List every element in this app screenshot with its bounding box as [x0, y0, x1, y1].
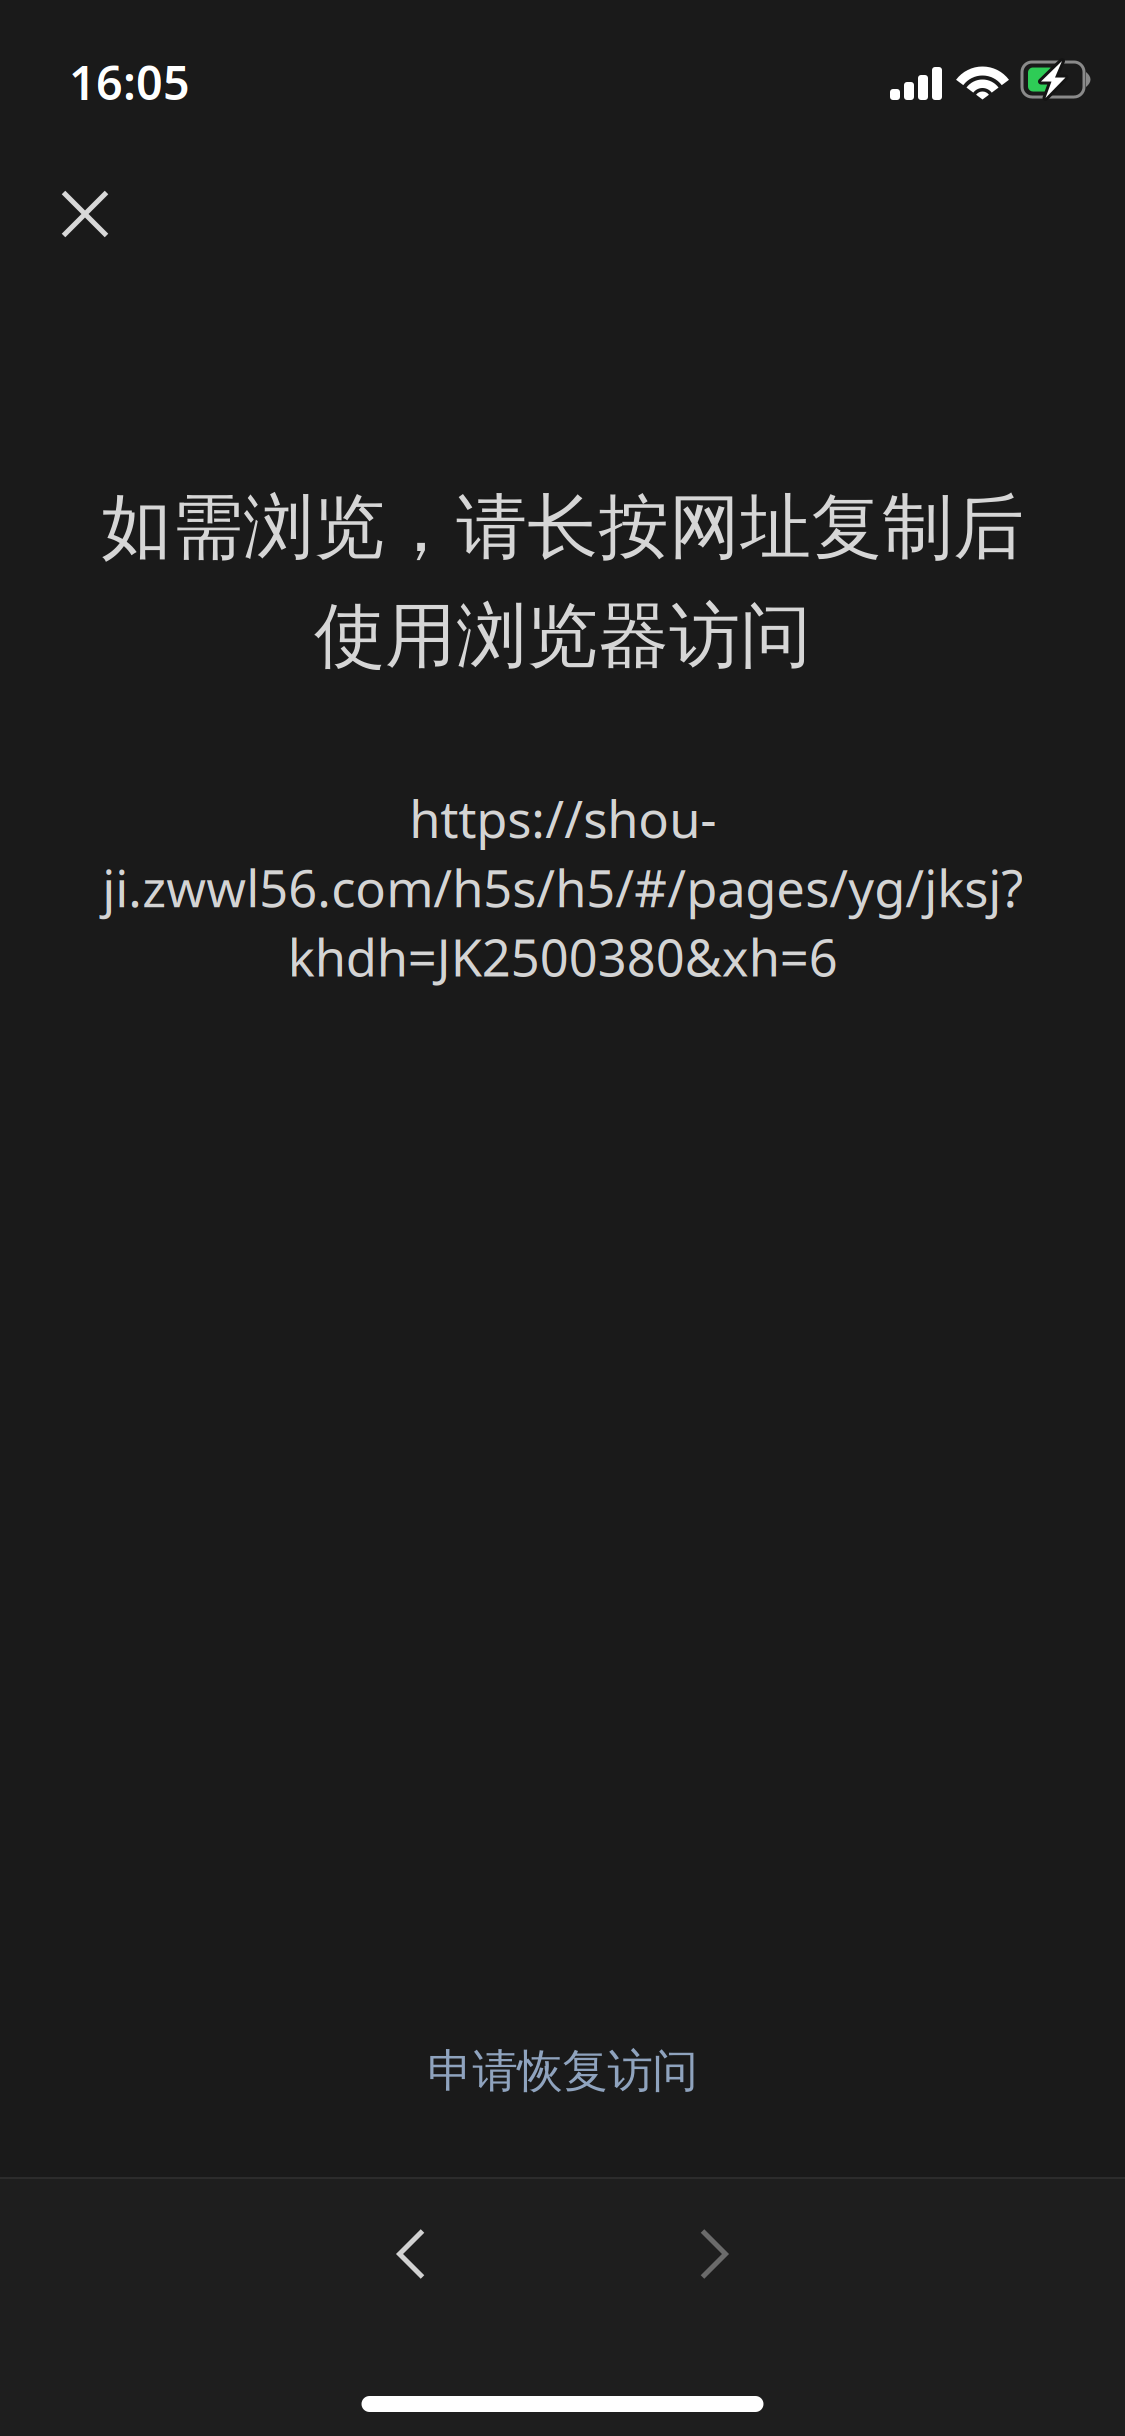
- button[interactable]: 申请恢复访问: [387, 2025, 737, 2117]
- button[interactable]: Back: [336, 2196, 486, 2312]
- button[interactable]: Forward: [639, 2196, 789, 2312]
- staticText: 如需浏览，请长按网址复制后 使用浏览器访问: [101, 484, 1024, 680]
- staticText: https://shou- ji.zwwl56.com/h5s/h5/#/pag…: [102, 785, 1023, 990]
- button[interactable]: Close: [0, 132, 149, 278]
- staticText: 申请恢复访问: [427, 2043, 697, 2099]
- staticText: 16:05: [69, 51, 190, 113]
